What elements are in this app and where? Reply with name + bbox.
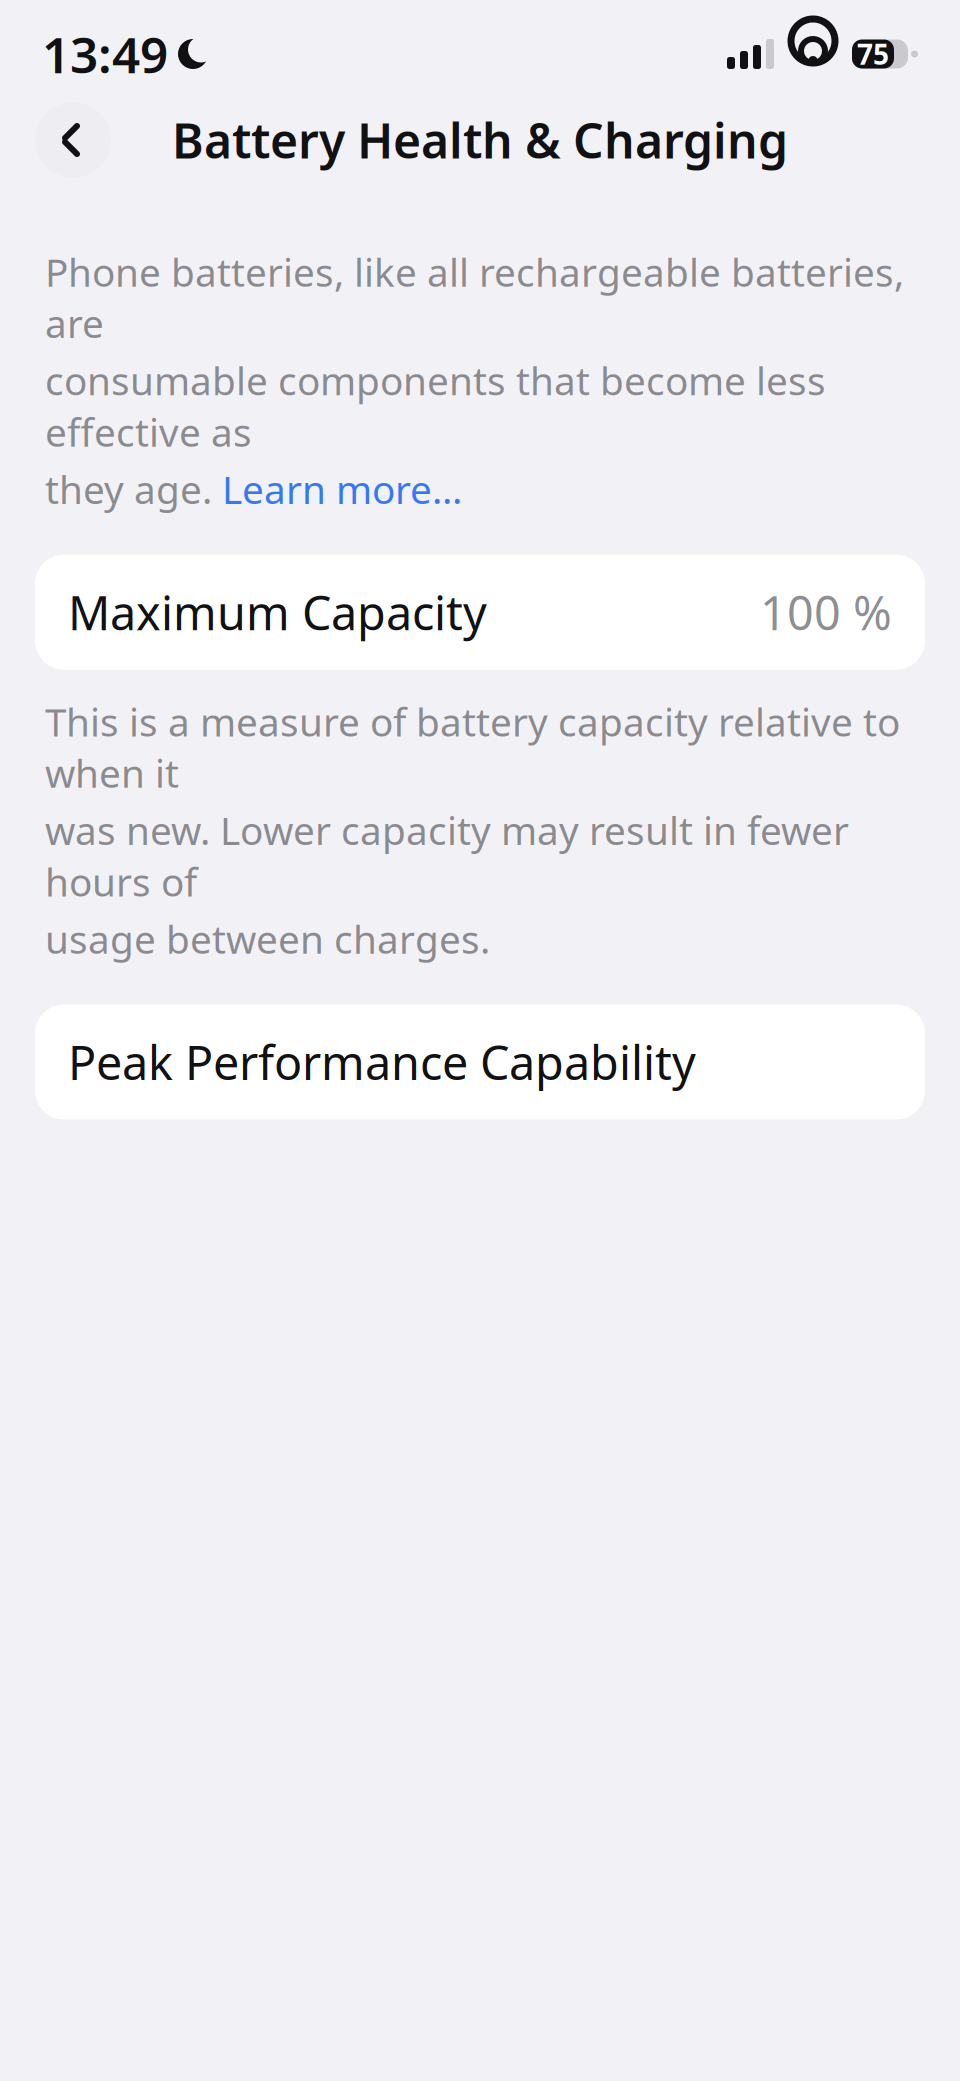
button[interactable]: Maximum Capacity bbox=[35, 555, 925, 670]
staticText: usage between charges. bbox=[45, 913, 490, 964]
button[interactable]: Learn more... bbox=[222, 463, 462, 515]
staticText: Peak Performance Capability bbox=[68, 1031, 696, 1093]
staticText: Maximum Capacity bbox=[68, 581, 487, 643]
staticText: they age. bbox=[45, 463, 222, 515]
staticText: This is a measure of battery capacity re… bbox=[45, 696, 900, 798]
button[interactable]: Back bbox=[35, 102, 111, 178]
staticText: Learn more... bbox=[222, 463, 462, 515]
staticText: was new. Lower capacity may result in fe… bbox=[45, 804, 849, 907]
button[interactable]: Peak Performance Capability bbox=[35, 1004, 925, 1119]
staticText: Phone batteries, like all rechargeable b… bbox=[45, 246, 904, 349]
staticText: 13:49 bbox=[42, 21, 168, 87]
staticText: Battery Health & Charging bbox=[172, 108, 788, 172]
staticText: 100 % bbox=[760, 581, 892, 643]
staticText: consumable components that become less e… bbox=[45, 355, 826, 457]
staticText: 75 bbox=[857, 35, 889, 73]
